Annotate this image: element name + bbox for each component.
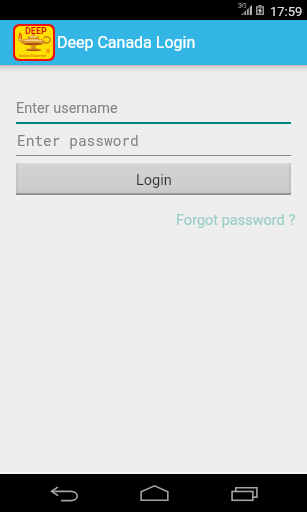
button[interactable]: Recents	[206, 474, 282, 512]
button[interactable]: Enter password	[16, 129, 291, 156]
staticText: Forgot password ?	[176, 212, 296, 229]
button[interactable]: Back	[26, 474, 102, 512]
staticText: 17:59	[270, 4, 303, 19]
button[interactable]: Forgot password ?	[174, 207, 297, 233]
staticText: DEEP	[25, 26, 47, 37]
button[interactable]: Login	[16, 163, 291, 195]
staticText: Login	[136, 172, 172, 189]
button[interactable]: Home	[116, 474, 192, 512]
button[interactable]: Enter username	[16, 96, 291, 124]
staticText: Enter password	[17, 131, 139, 150]
staticText: Enter username	[16, 100, 118, 117]
staticText: 3G	[238, 2, 247, 10]
staticText: Deep Canada Login	[57, 33, 196, 52]
staticText: Indian Gourmet	[19, 53, 47, 58]
